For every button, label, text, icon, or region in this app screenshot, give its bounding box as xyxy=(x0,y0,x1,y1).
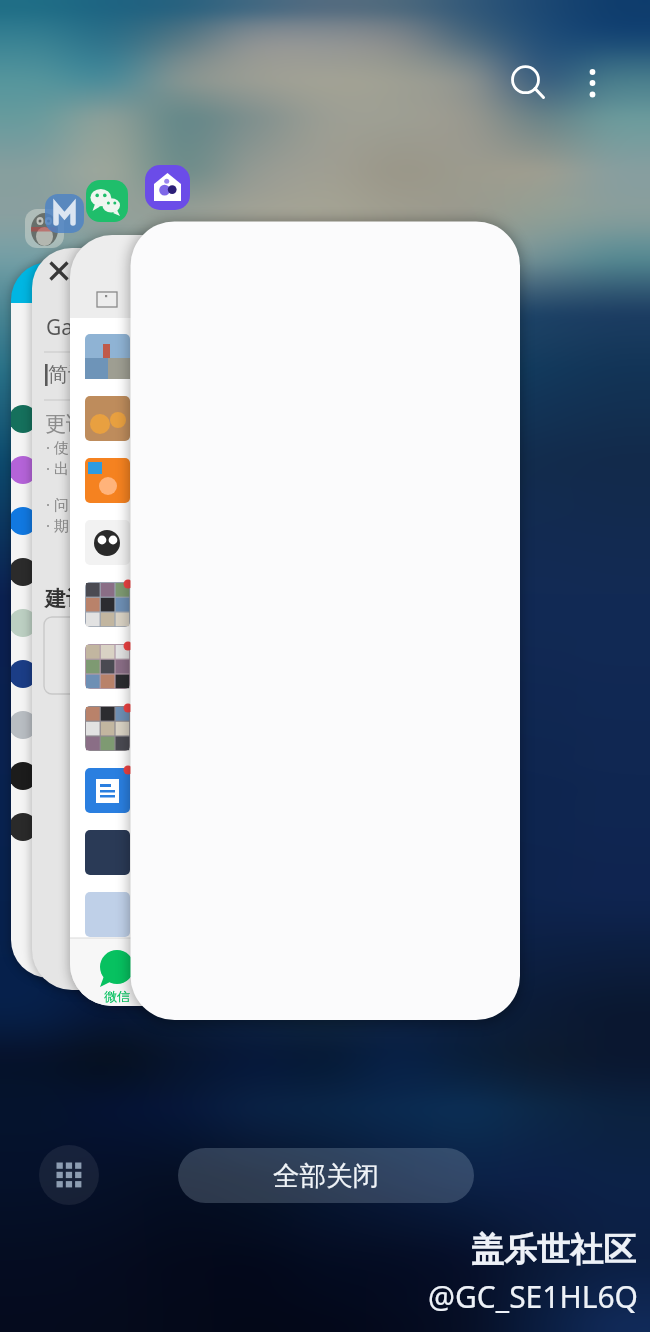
button[interactable]: Samsung Members xyxy=(130,221,520,1020)
button[interactable]: WeChat xyxy=(70,235,130,1006)
button[interactable]: More options xyxy=(570,56,616,102)
staticText: @GC_SE1HL6Q xyxy=(302,1276,638,1316)
button[interactable]: Recent app 2 xyxy=(32,248,70,990)
button[interactable]: 全部关闭 xyxy=(178,1148,474,1203)
button[interactable]: Recent app 1 xyxy=(11,262,32,978)
button[interactable]: Search xyxy=(500,54,552,106)
staticText: 盖乐世社区 xyxy=(302,1229,636,1273)
staticText: 全部关闭 xyxy=(273,1159,379,1192)
button[interactable]: Apps xyxy=(39,1145,99,1205)
button[interactable]: Close app xyxy=(45,257,73,286)
